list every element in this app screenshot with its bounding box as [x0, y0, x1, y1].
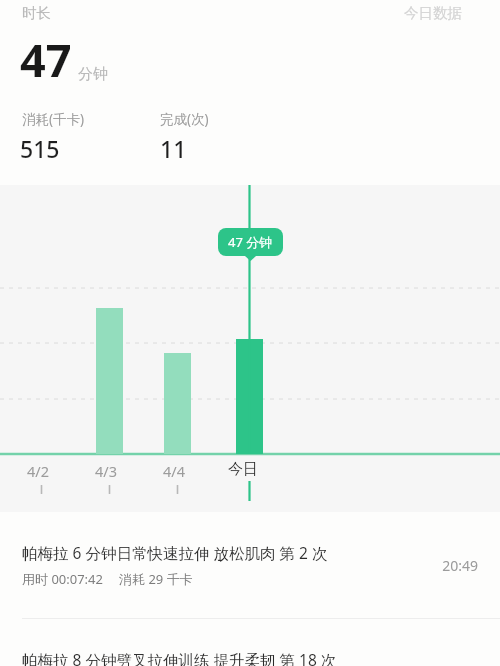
button[interactable]: 帕梅拉 6 分钟日常快速拉伸 放松肌肉 第 2 次: [0, 512, 500, 618]
staticText: 47 分钟: [228, 233, 273, 251]
button[interactable]: 今日数据: [404, 4, 462, 22]
staticText: 帕梅拉 6 分钟日常快速拉伸 放松肌肉 第 2 次: [22, 542, 328, 563]
staticText: 20:49: [442, 556, 478, 575]
staticText: 515: [20, 133, 60, 164]
staticText: 47: [20, 29, 72, 90]
staticText: 今日: [228, 460, 258, 479]
staticText: 4/2: [27, 461, 49, 481]
staticText: 消耗(千卡): [22, 110, 85, 128]
staticText: 用时 00:07:42: [22, 570, 103, 588]
staticText: 帕梅拉 8 分钟劈叉拉伸训练 提升柔韧 第 18 次: [22, 649, 337, 666]
staticText: 消耗 29 千卡: [119, 570, 193, 588]
staticText: 4/4: [163, 461, 185, 481]
staticText: 完成(次): [160, 110, 209, 128]
button[interactable]: 帕梅拉 8 分钟劈叉拉伸训练 提升柔韧 第 18 次: [0, 619, 500, 666]
staticText: 分钟: [78, 65, 108, 84]
staticText: 时长: [22, 4, 51, 22]
staticText: 11: [160, 133, 187, 164]
button[interactable]: 47 分钟: [218, 228, 283, 256]
staticText: 4/3: [95, 461, 117, 481]
